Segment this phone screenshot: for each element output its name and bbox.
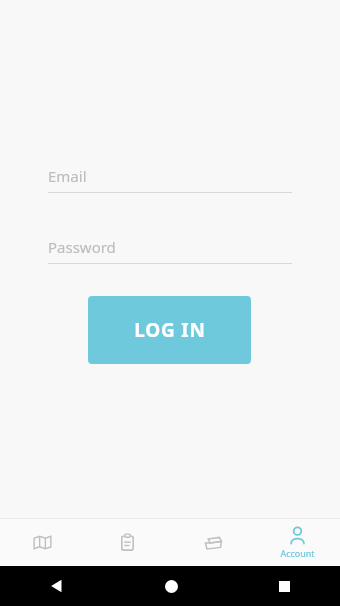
button[interactable]: Password	[48, 237, 292, 264]
staticText: Email	[48, 166, 87, 186]
button[interactable]: Account	[255, 519, 340, 566]
staticText: LOG IN	[134, 317, 206, 343]
button[interactable]: LOG IN	[88, 296, 251, 364]
button[interactable]: Email	[48, 166, 292, 193]
button[interactable]: Back	[40, 569, 74, 603]
button[interactable]: Map	[0, 519, 85, 566]
staticText: Password	[48, 237, 116, 257]
button[interactable]: Recent apps	[267, 569, 301, 603]
staticText: Account	[280, 547, 315, 559]
button[interactable]: Home	[154, 569, 188, 603]
button[interactable]: Tasks	[85, 519, 170, 566]
button[interactable]: Inbox	[170, 519, 255, 566]
